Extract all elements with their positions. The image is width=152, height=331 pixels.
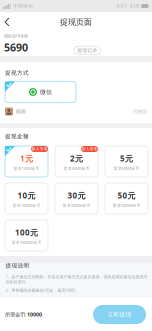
staticText: 新人专享 <box>81 146 97 151</box>
button[interactable]: 立即提现 <box>93 305 146 324</box>
staticText: 需消50000金币 <box>113 166 139 171</box>
staticText: 需消500000金币 <box>112 203 140 208</box>
staticText: 提现记录 <box>77 47 97 53</box>
staticText: 1元 <box>20 153 33 164</box>
staticText: 9:41 <box>117 3 127 9</box>
staticText: 需消1000000金币 <box>11 240 41 245</box>
button[interactable]: 10元 <box>5 183 48 214</box>
staticText: 50元 <box>117 190 135 201</box>
staticText: 5元 <box>120 153 133 164</box>
button[interactable]: 50元 <box>105 183 148 214</box>
staticText: 5690 <box>4 40 28 55</box>
staticText: 立即提现 <box>107 311 131 318</box>
button[interactable]: 30元 <box>55 183 98 214</box>
button[interactable]: 5元 <box>105 146 148 177</box>
staticText: 1、由于微信支付限制，非实名用户每天无法多次提现，请务必绑定微信后提现可在此处进… <box>5 274 147 285</box>
button[interactable]: 100元 <box>5 220 48 251</box>
staticText: 所需金币: <box>5 311 27 318</box>
staticText: 需消13000金币 <box>13 166 39 171</box>
staticText: 需消100000金币 <box>12 203 40 208</box>
staticText: 83% <box>130 3 140 9</box>
staticText: 2、零售额的金额最低1元起，最高100元。 <box>5 287 79 293</box>
staticText: 100元 <box>15 227 38 238</box>
staticText: 需消300000金币 <box>62 203 90 208</box>
staticText: 微信 <box>40 88 52 96</box>
staticText: 10元 <box>17 190 35 201</box>
staticText: (已绑定) <box>133 109 147 114</box>
button[interactable]: 提现记录 <box>74 46 101 55</box>
staticText: 提现金额 <box>5 133 29 140</box>
staticText: 需消20000金币 <box>63 166 89 171</box>
staticText: 2元 <box>70 153 83 164</box>
staticText: 提现页面 <box>60 17 92 27</box>
staticText: 我的金币余额 <box>4 33 28 39</box>
button[interactable]: 2元 <box>55 146 98 177</box>
staticText: 10000 <box>27 311 42 318</box>
staticText: 30元 <box>67 190 85 201</box>
staticText: 提现方式 <box>5 69 29 77</box>
staticText: 新人专享 <box>31 146 47 151</box>
button[interactable]: 1元 <box>5 146 48 177</box>
staticText: 提现说明 <box>5 262 29 269</box>
staticText: 中国移动 <box>13 3 33 9</box>
button[interactable]: 返回 <box>2 15 16 28</box>
staticText: 昵称 <box>16 108 26 115</box>
button[interactable]: 微信 <box>5 81 76 102</box>
